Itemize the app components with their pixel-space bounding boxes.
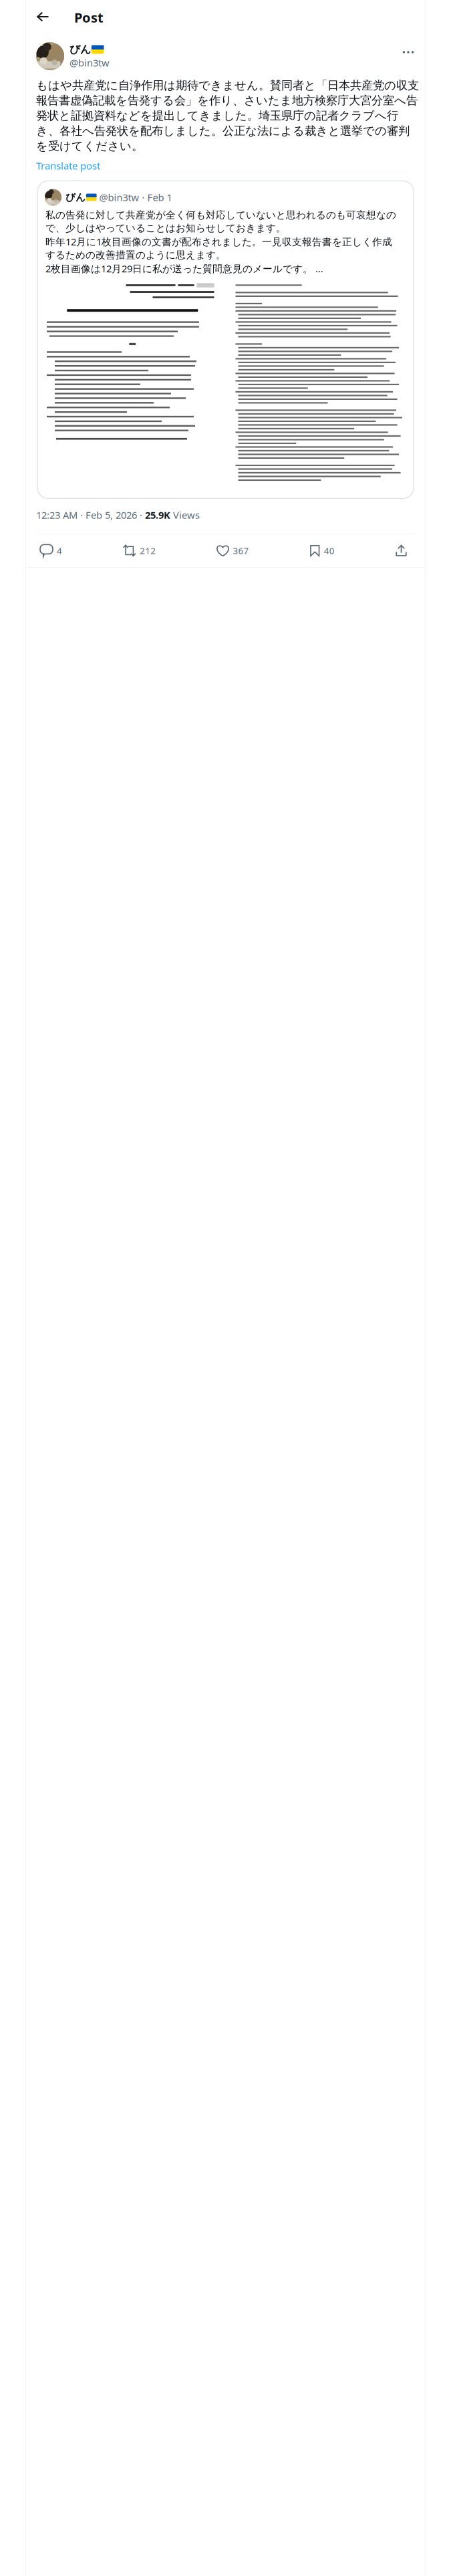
- staticText: 40: [324, 545, 335, 557]
- button[interactable]: Bookmark: [310, 539, 335, 562]
- staticText: @bin3tw · Feb 1: [99, 191, 172, 204]
- staticText: Views: [170, 508, 200, 521]
- staticText: 私の告発に対して共産党が全く何も対応していないと思われるのも可哀想なので、少しは…: [45, 209, 396, 234]
- staticText: 212: [140, 545, 156, 557]
- staticText: 昨年12月に1枚目画像の文書が配布されました。一見収支報告書を正しく作成するため…: [45, 235, 392, 261]
- button[interactable]: Back: [31, 5, 54, 28]
- staticText: びん: [69, 43, 91, 56]
- button[interactable]: Share: [396, 539, 407, 562]
- staticText: @bin3tw: [69, 56, 110, 69]
- staticText: もはや共産党に自浄作用は期待できません。賛同者と「日本共産党の収支報告書虚偽記載…: [36, 78, 419, 153]
- staticText: 12:23 AM · Feb 5, 2026 ·: [36, 508, 145, 521]
- button[interactable]: Translate post: [26, 153, 110, 174]
- staticText: Post: [74, 8, 104, 26]
- button[interactable]: Like: [217, 539, 249, 562]
- button[interactable]: Repost: [123, 539, 156, 562]
- staticText: びん: [65, 191, 86, 203]
- staticText: 25.9K: [145, 508, 170, 521]
- staticText: 4: [57, 545, 62, 557]
- staticText: 2枚目画像は12月29日に私が送った質問意見のメールです。 …: [45, 262, 323, 275]
- staticText: 367: [233, 545, 249, 557]
- staticText: Translate post: [36, 159, 100, 172]
- button[interactable]: More: [398, 42, 418, 62]
- button[interactable]: Reply: [40, 539, 62, 562]
